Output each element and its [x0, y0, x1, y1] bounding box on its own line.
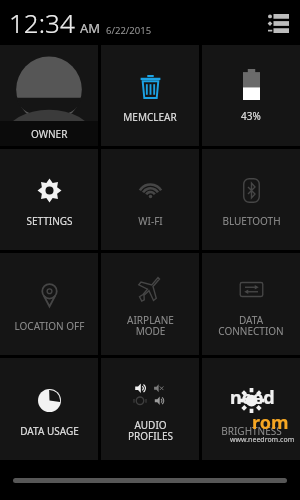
- staticText: AUDIO PROFILES: [128, 418, 173, 443]
- button[interactable]: Collapse quick settings: [0, 460, 300, 500]
- button[interactable]: WI-FI: [101, 149, 199, 250]
- staticText: rom: [252, 410, 289, 435]
- staticText: OWNER: [31, 127, 68, 141]
- button[interactable]: DATA CONNECTION: [202, 253, 300, 355]
- button[interactable]: AIRPLANE MODE: [101, 253, 199, 355]
- staticText: BRIGHTNESS: [221, 424, 282, 438]
- staticText: DATA CONNECTION: [218, 313, 284, 338]
- button[interactable]: Notification list: [265, 10, 291, 36]
- staticText: 6/22/2015: [106, 24, 152, 37]
- staticText: MEMCLEAR: [123, 110, 177, 124]
- button[interactable]: DATA USAGE: [0, 358, 98, 460]
- staticText: DATA USAGE: [20, 424, 79, 438]
- staticText: www.needrom.com: [230, 435, 295, 445]
- staticText: BLUETOOTH: [222, 214, 281, 228]
- staticText: 43%: [241, 109, 261, 123]
- staticText: SETTINGS: [26, 214, 73, 228]
- button[interactable]: MEMCLEAR: [101, 45, 199, 146]
- button[interactable]: OWNER: [0, 45, 98, 146]
- button[interactable]: AUDIO PROFILES: [101, 358, 199, 460]
- button[interactable]: BRIGHTNESS: [202, 358, 300, 460]
- button[interactable]: SETTINGS: [0, 149, 98, 250]
- staticText: AIRPLANE MODE: [127, 313, 174, 338]
- staticText: need: [230, 385, 275, 410]
- staticText: 12:34: [9, 5, 75, 40]
- staticText: WI-FI: [138, 214, 163, 228]
- button[interactable]: 43%: [202, 45, 300, 146]
- button[interactable]: LOCATION OFF: [0, 253, 98, 355]
- staticText: AM: [80, 19, 101, 37]
- staticText: LOCATION OFF: [14, 319, 85, 333]
- button[interactable]: BLUETOOTH: [202, 149, 300, 250]
